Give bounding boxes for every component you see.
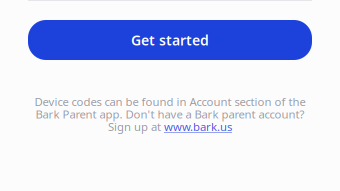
staticText: Device codes can be found in Account sec… (34, 94, 305, 109)
staticText: Sign up at (108, 119, 164, 134)
button[interactable]: www.bark.us (164, 119, 232, 134)
staticText: Bark Parent app. Don't have a Bark paren… (35, 106, 304, 122)
staticText: Get started (131, 30, 209, 50)
staticText: www.bark.us (164, 119, 232, 134)
button[interactable]: Get started (28, 20, 312, 60)
